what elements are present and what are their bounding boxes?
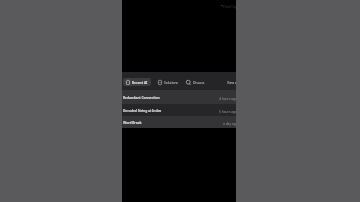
staticText: Solutions bbox=[164, 80, 178, 84]
staticText: FlexClip bbox=[223, 4, 236, 9]
staticText: Discuss bbox=[193, 80, 205, 84]
staticText: Recent AI bbox=[132, 80, 148, 84]
button[interactable]: Recent AI bbox=[123, 78, 151, 86]
staticText: 5 hours ago bbox=[219, 109, 236, 113]
staticText: Decoded String at Index bbox=[123, 108, 162, 112]
button[interactable]: Discuss bbox=[184, 78, 207, 86]
staticText: Word Break bbox=[123, 120, 142, 124]
staticText: View all bbox=[227, 80, 236, 84]
button[interactable]: View all bbox=[227, 78, 236, 86]
button[interactable]: Word Break bbox=[122, 116, 236, 128]
staticText: Redundant Connection bbox=[123, 95, 160, 99]
button[interactable]: Solutions bbox=[156, 78, 180, 86]
staticText: a day ago bbox=[223, 121, 236, 125]
button[interactable]: Redundant Connection bbox=[122, 90, 236, 104]
staticText: 4 hours ago bbox=[219, 96, 236, 100]
button[interactable]: Decoded String at Index bbox=[122, 104, 236, 116]
